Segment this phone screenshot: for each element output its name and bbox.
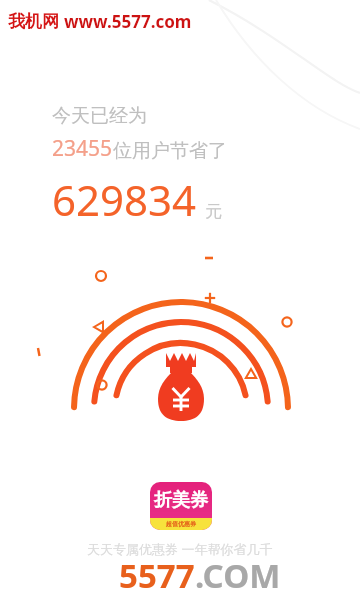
staticText: 天天专属优惠券 一年帮你省几千: [87, 540, 273, 558]
staticText: 5577: [119, 553, 195, 598]
staticText: 元: [205, 201, 222, 222]
staticText: .COM: [195, 553, 281, 598]
staticText: 位用户节省了: [113, 139, 227, 163]
staticText: www.5577.com: [64, 10, 192, 33]
staticText: 629834: [52, 171, 197, 228]
staticText: 23455: [52, 134, 113, 163]
staticText: 折美券: [154, 489, 208, 512]
staticText: 超值优惠券: [166, 520, 196, 528]
staticText: 我机网: [8, 11, 59, 32]
staticText: 今天已经为: [52, 104, 147, 128]
button[interactable]: 折美券 app icon: [150, 482, 212, 530]
